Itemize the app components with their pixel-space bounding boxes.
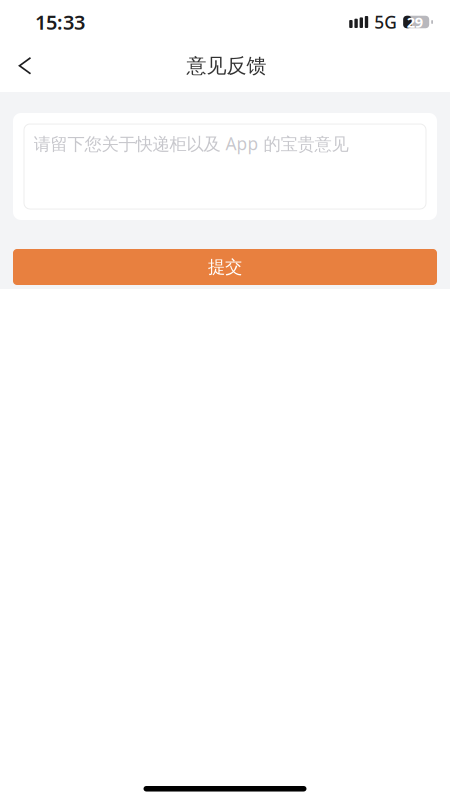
button[interactable]: 提交	[13, 249, 437, 285]
button[interactable]: 请留下您关于快递柜以及 App 的宝贵意见	[24, 124, 426, 209]
staticText: 5G	[374, 10, 397, 33]
staticText: 请留下您关于快递柜以及 App 的宝贵意见	[33, 132, 348, 155]
staticText: 意见反馈	[186, 53, 266, 78]
staticText: 提交	[208, 256, 242, 278]
staticText: 15:33	[35, 9, 85, 35]
button[interactable]: 返回	[3, 43, 47, 89]
staticText: 29	[407, 12, 423, 32]
